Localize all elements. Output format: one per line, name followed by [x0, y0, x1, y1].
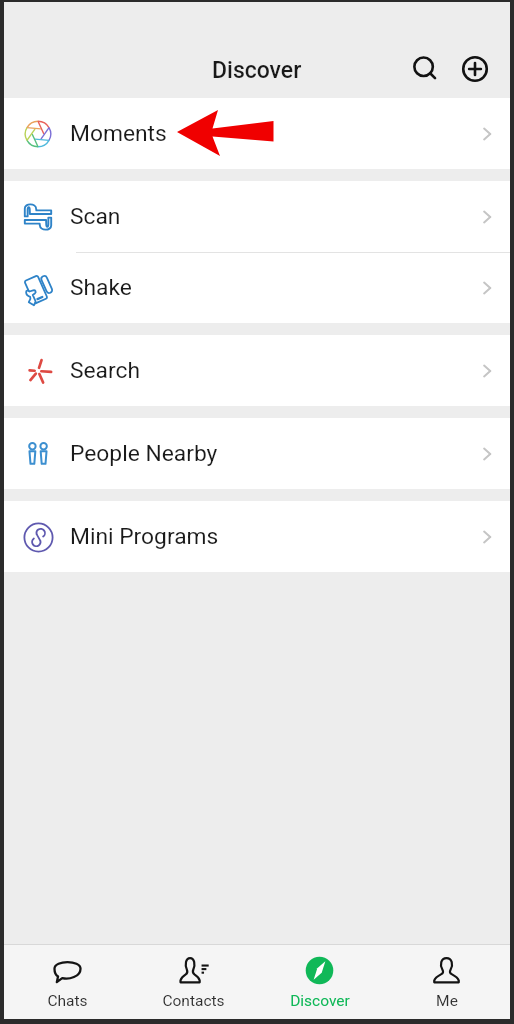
button[interactable]: Scan [4, 181, 510, 252]
staticText: Moments [70, 120, 167, 147]
staticText: Search [70, 357, 141, 384]
button[interactable]: Moments [4, 98, 510, 169]
button[interactable]: Shake [4, 252, 510, 323]
button[interactable]: Search [4, 335, 510, 406]
button[interactable]: Mini Programs [4, 501, 510, 572]
button[interactable]: Me [383, 945, 510, 1019]
button[interactable]: Add [450, 44, 500, 94]
staticText: Shake [70, 274, 132, 301]
staticText: Scan [70, 203, 121, 230]
staticText: Discover [212, 57, 302, 84]
button[interactable]: Chats [4, 945, 130, 1019]
button[interactable]: Search [400, 44, 450, 94]
staticText: Contacts [162, 992, 225, 1010]
button[interactable]: Contacts [130, 945, 256, 1019]
button[interactable]: People Nearby [4, 418, 510, 489]
button[interactable]: Discover [256, 945, 383, 1019]
staticText: Mini Programs [70, 523, 219, 550]
staticText: Chats [47, 992, 88, 1010]
staticText: People Nearby [70, 440, 218, 467]
staticText: Discover [290, 992, 350, 1010]
staticText: Me [436, 992, 458, 1010]
